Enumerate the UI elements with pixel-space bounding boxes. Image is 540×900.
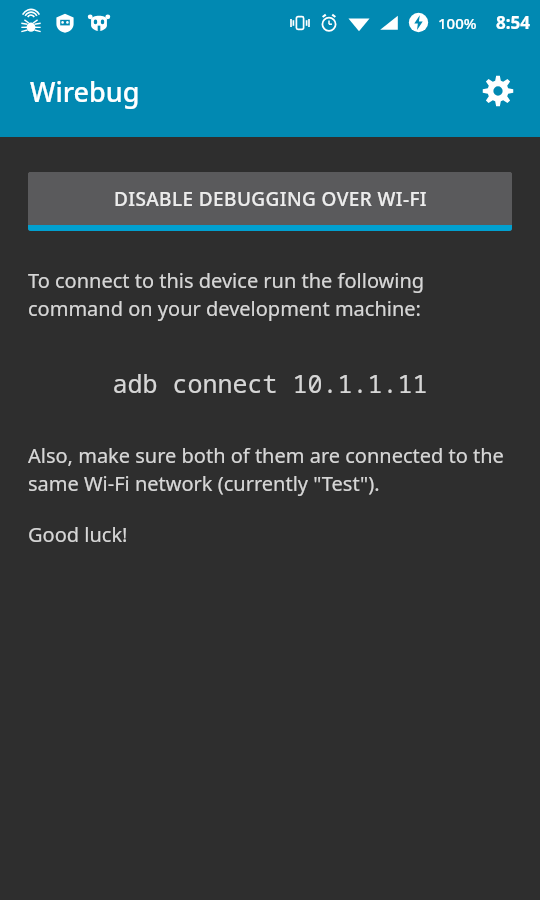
staticText: To connect to this device run the follow… — [28, 267, 512, 322]
staticText: 8:54 — [496, 11, 530, 34]
staticText: Good luck! — [28, 521, 128, 548]
staticText: Wirebug — [30, 73, 140, 110]
button[interactable]: DISABLE DEBUGGING OVER WI-FI — [28, 172, 512, 231]
staticText: adb connect 10.1.1.11 — [28, 366, 512, 400]
staticText: 100% — [438, 13, 477, 33]
button[interactable]: Settings — [470, 63, 526, 119]
staticText: DISABLE DEBUGGING OVER WI-FI — [114, 186, 427, 212]
staticText: Also, make sure both of them are connect… — [28, 442, 512, 497]
